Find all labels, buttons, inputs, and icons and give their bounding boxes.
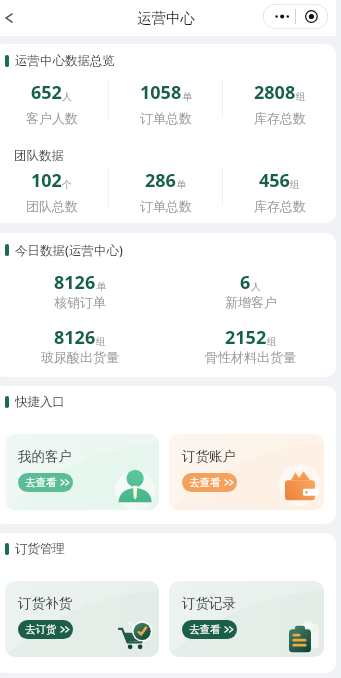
button[interactable]: 订货账户 bbox=[169, 434, 324, 510]
staticText: 个 bbox=[62, 178, 72, 191]
staticText: 订单总数 bbox=[140, 110, 192, 126]
staticText: 订单总数 bbox=[140, 198, 192, 214]
staticText: 去查看 bbox=[189, 476, 221, 489]
staticText: 订货记录 bbox=[182, 595, 236, 612]
staticText: 1058 bbox=[140, 80, 182, 105]
staticText: 组 bbox=[296, 90, 306, 103]
staticText: 6 bbox=[240, 270, 251, 295]
button[interactable]: Back bbox=[0, 2, 27, 34]
button[interactable]: Menu and close bbox=[263, 4, 328, 29]
staticText: 组 bbox=[267, 335, 277, 348]
staticText: 团队总数 bbox=[26, 198, 78, 214]
staticText: 人 bbox=[62, 90, 72, 103]
staticText: 102 bbox=[31, 168, 62, 193]
staticText: 单 bbox=[96, 280, 106, 293]
staticText: 今日数据(运营中心) bbox=[15, 242, 123, 259]
staticText: 库存总数 bbox=[254, 110, 306, 126]
staticText: 单 bbox=[176, 178, 186, 191]
staticText: 订货补货 bbox=[18, 595, 72, 612]
staticText: 库存总数 bbox=[254, 198, 306, 214]
staticText: 快捷入口 bbox=[15, 394, 65, 410]
button[interactable]: 我的客户 bbox=[5, 434, 159, 510]
staticText: 286 bbox=[145, 168, 176, 193]
staticText: 456 bbox=[259, 168, 290, 193]
staticText: 团队数据 bbox=[14, 148, 64, 164]
staticText: 我的客户 bbox=[18, 448, 72, 465]
staticText: 去查看 bbox=[189, 623, 221, 636]
staticText: 652 bbox=[31, 80, 62, 105]
staticText: 核销订单 bbox=[54, 294, 106, 310]
staticText: 去查看 bbox=[25, 476, 57, 489]
staticText: 客户人数 bbox=[26, 110, 78, 126]
staticText: 8126 bbox=[54, 325, 96, 350]
staticText: 2808 bbox=[254, 80, 296, 105]
staticText: 订货管理 bbox=[15, 541, 65, 557]
staticText: 新增客户 bbox=[225, 294, 277, 310]
staticText: 订货账户 bbox=[182, 448, 236, 465]
staticText: 运营中心 bbox=[137, 9, 195, 27]
staticText: 组 bbox=[290, 178, 300, 191]
staticText: 骨性材料出货量 bbox=[205, 349, 296, 365]
staticText: 8126 bbox=[54, 270, 96, 295]
button[interactable]: 订货记录 bbox=[169, 581, 324, 657]
staticText: 去订货 bbox=[25, 623, 57, 636]
staticText: 人 bbox=[251, 280, 261, 293]
staticText: 单 bbox=[182, 90, 192, 103]
staticText: 组 bbox=[96, 335, 106, 348]
staticText: 运营中心数据总览 bbox=[15, 53, 115, 69]
button[interactable]: 订货补货 bbox=[5, 581, 159, 657]
staticText: 2152 bbox=[225, 325, 267, 350]
staticText: 玻尿酸出货量 bbox=[41, 349, 119, 365]
